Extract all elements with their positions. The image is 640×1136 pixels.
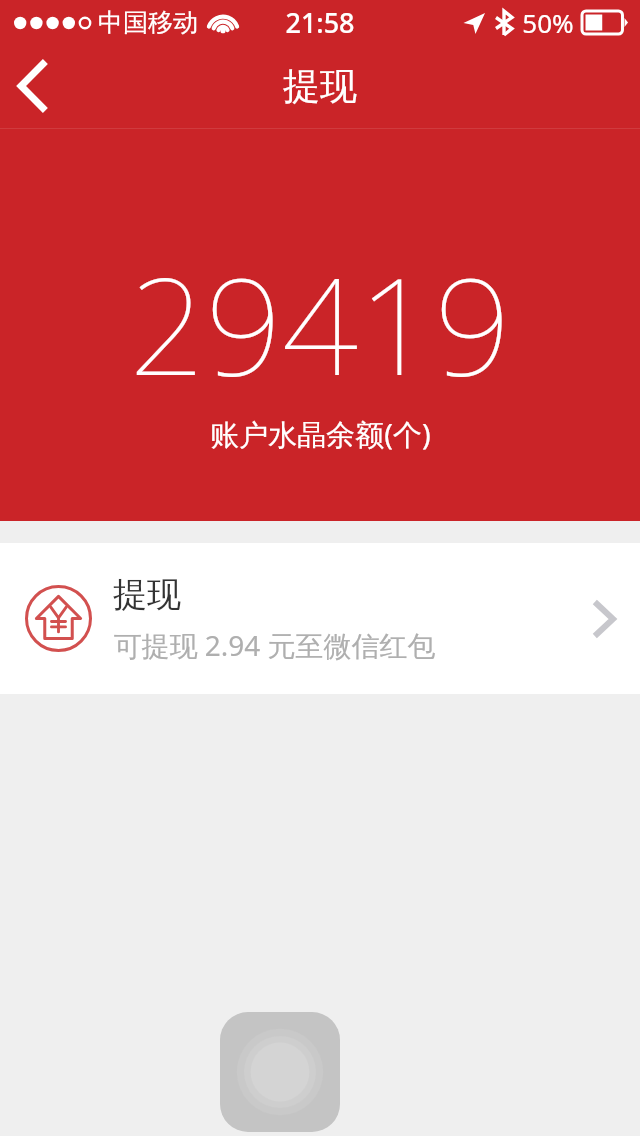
button[interactable]: AssistiveTouch	[220, 1012, 340, 1132]
button[interactable]: 提现	[0, 543, 640, 694]
staticText: 提现	[283, 63, 357, 110]
staticText: 账户水晶余额(个)	[210, 414, 431, 454]
staticText: 可提现 2.94 元至微信红包	[113, 626, 436, 664]
staticText: 29419	[129, 232, 511, 415]
button[interactable]: Back	[0, 44, 64, 128]
staticText: 50%	[522, 5, 574, 40]
staticText: 提现	[113, 573, 181, 616]
staticText: 21:58	[285, 4, 355, 41]
staticText: 中国移动	[98, 7, 198, 38]
